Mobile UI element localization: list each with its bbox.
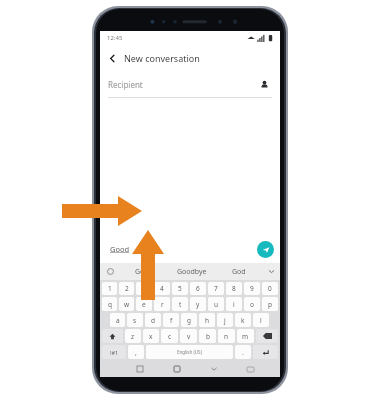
button[interactable]: Goodbye: [168, 263, 215, 280]
staticText: 1: [108, 284, 112, 293]
staticText: u: [214, 300, 219, 309]
staticText: h: [205, 316, 210, 325]
button[interactable]: k: [235, 313, 251, 327]
button[interactable]: m: [237, 329, 254, 343]
button[interactable]: 9: [244, 282, 260, 295]
button[interactable]: Send: [257, 241, 274, 258]
staticText: 0: [268, 284, 272, 293]
button[interactable]: Contacts: [256, 76, 272, 92]
staticText: p: [268, 300, 272, 309]
staticText: n: [224, 332, 229, 341]
button[interactable]: f: [163, 313, 179, 327]
staticText: God: [232, 267, 246, 277]
staticText: .: [242, 348, 244, 357]
staticText: d: [151, 316, 155, 325]
staticText: s: [133, 316, 137, 325]
button[interactable]: 0: [262, 282, 278, 295]
staticText: 8: [232, 284, 236, 293]
staticText: Good: [110, 244, 130, 254]
button[interactable]: w: [119, 297, 134, 311]
staticText: j: [224, 316, 226, 325]
button[interactable]: 7: [208, 282, 224, 295]
staticText: v: [187, 332, 191, 341]
staticText: q: [108, 300, 112, 309]
button[interactable]: Keyboard: [232, 361, 269, 377]
button[interactable]: v: [180, 329, 197, 343]
button[interactable]: y: [190, 297, 206, 311]
button[interactable]: More suggestions: [262, 263, 280, 280]
staticText: !#1: [110, 349, 119, 356]
staticText: 12:45: [107, 34, 123, 42]
staticText: 9: [250, 284, 254, 293]
button[interactable]: s: [127, 313, 143, 327]
staticText: Good: [135, 267, 153, 277]
button[interactable]: 8: [226, 282, 242, 295]
button[interactable]: u: [208, 297, 224, 311]
button[interactable]: 3: [136, 282, 152, 295]
button[interactable]: God: [215, 263, 262, 280]
button[interactable]: Good: [106, 240, 253, 258]
button[interactable]: 1: [102, 282, 117, 295]
button[interactable]: t: [172, 297, 188, 311]
button[interactable]: 6: [190, 282, 206, 295]
staticText: k: [241, 316, 245, 325]
staticText: c: [168, 332, 172, 341]
staticText: English (US): [177, 349, 202, 355]
staticText: 6: [196, 284, 200, 293]
button[interactable]: 5: [172, 282, 188, 295]
button[interactable]: p: [262, 297, 278, 311]
button[interactable]: h: [199, 313, 215, 327]
button[interactable]: Emoji: [100, 263, 120, 280]
button[interactable]: English (US): [146, 345, 233, 359]
staticText: f: [170, 316, 173, 325]
staticText: l: [260, 316, 262, 325]
button[interactable]: g: [181, 313, 197, 327]
button[interactable]: !#1: [102, 345, 126, 359]
button[interactable]: q: [102, 297, 117, 311]
staticText: t: [179, 300, 182, 309]
staticText: 7: [214, 284, 218, 293]
staticText: g: [187, 316, 191, 325]
staticText: w: [124, 300, 130, 309]
staticText: y: [196, 300, 200, 309]
button[interactable]: x: [143, 329, 159, 343]
staticText: 4: [160, 284, 164, 293]
staticText: a: [116, 316, 120, 325]
staticText: i: [233, 300, 235, 309]
button[interactable]: Good: [120, 263, 168, 280]
button[interactable]: 4: [154, 282, 170, 295]
staticText: New conversation: [124, 52, 200, 64]
staticText: r: [161, 300, 164, 309]
button[interactable]: r: [154, 297, 170, 311]
button[interactable]: n: [218, 329, 235, 343]
button[interactable]: 2: [119, 282, 134, 295]
staticText: m: [242, 332, 249, 341]
staticText: o: [250, 300, 254, 309]
staticText: b: [206, 332, 210, 341]
button[interactable]: c: [161, 329, 178, 343]
button[interactable]: b: [199, 329, 216, 343]
button[interactable]: Backspace: [256, 329, 278, 343]
button[interactable]: .: [235, 345, 251, 359]
button[interactable]: Recents: [121, 361, 158, 377]
button[interactable]: Hide keyboard: [195, 361, 232, 377]
button[interactable]: l: [253, 313, 269, 327]
button[interactable]: d: [145, 313, 161, 327]
button[interactable]: Back: [100, 46, 124, 70]
button[interactable]: o: [244, 297, 260, 311]
staticText: 5: [178, 284, 182, 293]
button[interactable]: Home: [158, 361, 195, 377]
button[interactable]: ,: [128, 345, 144, 359]
staticText: e: [142, 300, 146, 309]
button[interactable]: a: [110, 313, 125, 327]
button[interactable]: i: [226, 297, 242, 311]
button[interactable]: Enter: [253, 345, 278, 359]
staticText: z: [131, 332, 135, 341]
staticText: ,: [135, 348, 137, 357]
button[interactable]: z: [125, 329, 141, 343]
staticText: x: [149, 332, 153, 341]
button[interactable]: j: [217, 313, 233, 327]
button[interactable]: e: [136, 297, 152, 311]
button[interactable]: Shift: [102, 329, 123, 343]
